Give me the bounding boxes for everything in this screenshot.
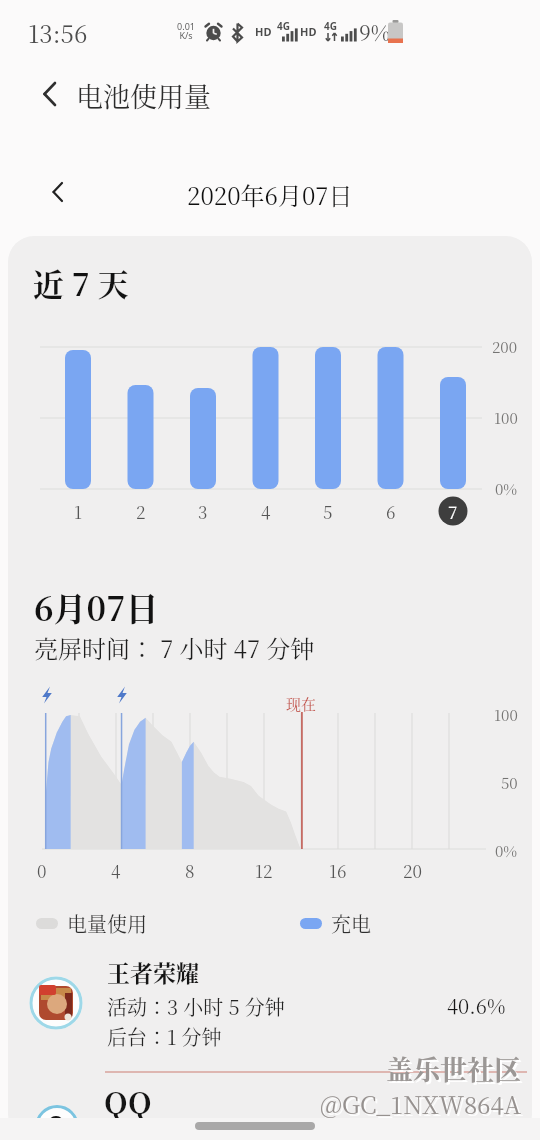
staticText: 2: [136, 499, 146, 523]
staticText: 12: [255, 858, 273, 882]
staticText: @GC_1NXW864A: [320, 1086, 521, 1120]
staticText: 6: [386, 499, 396, 523]
staticText: 盖乐世社区: [386, 1049, 521, 1088]
staticText: 4G: [324, 19, 337, 33]
staticText: 8: [185, 858, 195, 882]
staticText: 5: [323, 499, 333, 523]
staticText: 盖乐世社区: [388, 1051, 523, 1090]
staticText: 200: [492, 336, 518, 358]
staticText: 100: [494, 407, 518, 429]
staticText: 3: [198, 499, 208, 523]
staticText: 4: [261, 499, 271, 523]
button[interactable]: [38, 172, 78, 212]
staticText: 0.01 K/s: [172, 20, 200, 42]
staticText: 13:56: [28, 15, 88, 49]
staticText: @GC_1NXW864A: [322, 1088, 523, 1122]
staticText: 近 7 天: [33, 260, 129, 305]
staticText: 4G: [277, 19, 290, 33]
staticText: 现在: [286, 693, 317, 715]
staticText: QQ: [104, 1079, 152, 1122]
staticText: 9%: [359, 17, 391, 47]
staticText: 亮屏时间： 7 小时 47 分钟: [34, 630, 315, 664]
staticText: 0%: [495, 840, 518, 862]
staticText: 6月07日: [34, 583, 159, 630]
staticText: 活动：3 小时 5 分钟: [107, 992, 285, 1021]
staticText: 王者荣耀: [107, 956, 199, 989]
staticText: 50: [501, 772, 518, 794]
staticText: 4: [111, 858, 121, 882]
staticText: 后台：1 分钟: [107, 1022, 222, 1051]
staticText: 2020年6月07日: [187, 177, 353, 211]
staticText: 1: [74, 499, 83, 523]
button[interactable]: [195, 1122, 315, 1130]
staticText: HD: [300, 24, 317, 39]
staticText: 20: [403, 858, 422, 882]
staticText: 电量使用: [67, 909, 147, 938]
staticText: 充电: [331, 909, 371, 938]
staticText: HD: [255, 24, 272, 39]
staticText: 0%: [495, 478, 518, 500]
button[interactable]: [28, 74, 72, 114]
staticText: 7: [448, 499, 458, 523]
button[interactable]: [8, 946, 532, 1068]
staticText: 40.6%: [447, 991, 506, 1020]
staticText: 0: [37, 858, 47, 882]
staticText: 100: [494, 704, 518, 726]
button[interactable]: [8, 1072, 532, 1140]
staticText: 电池使用量: [76, 76, 211, 115]
staticText: 16: [329, 858, 347, 882]
